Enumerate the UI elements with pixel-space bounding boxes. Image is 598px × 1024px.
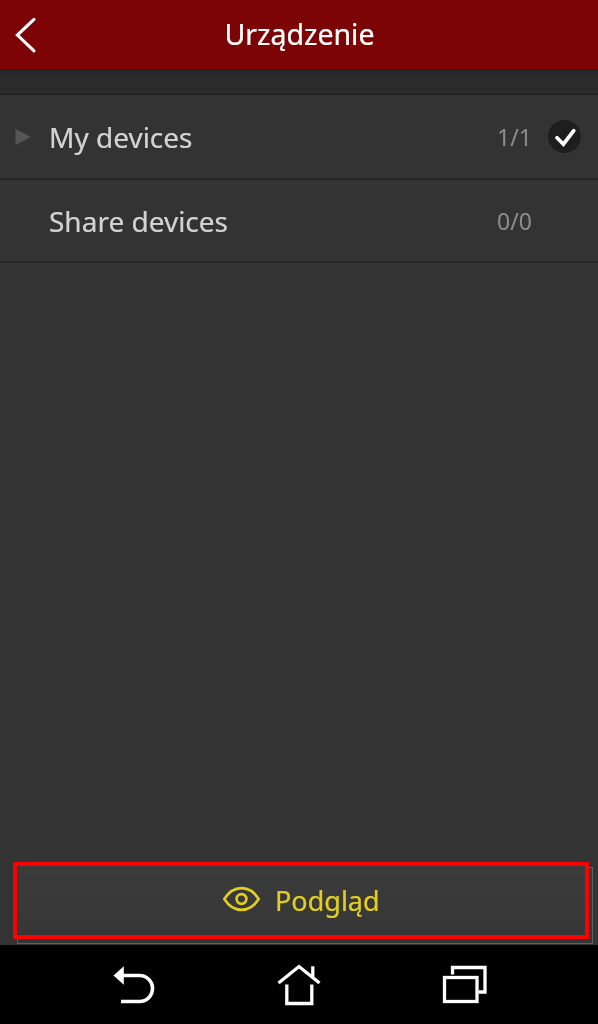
button[interactable]: Back: [0, 0, 52, 69]
button[interactable]: My devices: [0, 95, 598, 178]
staticText: My devices: [49, 118, 193, 156]
button[interactable]: Share devices: [0, 180, 598, 261]
staticText: Urządzenie: [224, 15, 375, 54]
button[interactable]: Home: [259, 945, 339, 1024]
staticText: Share devices: [49, 202, 229, 240]
button[interactable]: Recent apps: [429, 945, 509, 1024]
staticText: 1/1: [497, 121, 532, 152]
button[interactable]: Back: [90, 945, 170, 1024]
staticText: 0/0: [497, 205, 532, 236]
staticText: Podgląd: [275, 882, 380, 919]
button[interactable]: Podgląd: [17, 866, 585, 935]
